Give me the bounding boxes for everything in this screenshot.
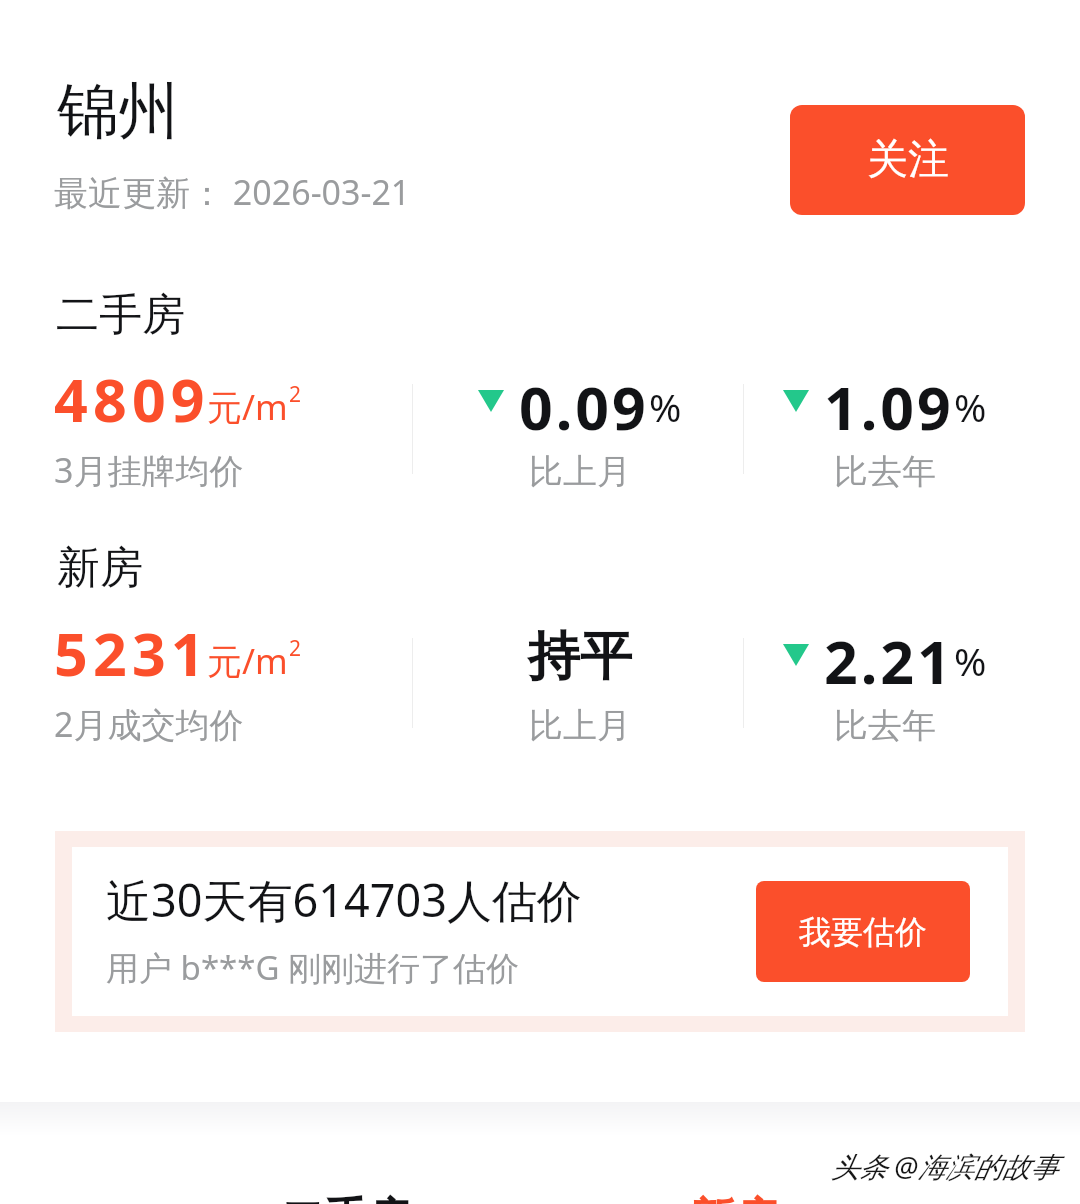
staticText: 2	[289, 634, 302, 663]
staticText: 近30天有614703人估价	[106, 869, 582, 930]
staticText: 用户 b***G 刚刚进行了估价	[106, 945, 520, 990]
staticText: %	[954, 380, 987, 433]
button[interactable]: 新房	[593, 1164, 873, 1204]
staticText: 2月成交均价	[54, 701, 244, 747]
staticText: 比上月	[529, 704, 631, 747]
staticText: 新房	[57, 541, 143, 595]
staticText: 持平	[528, 624, 632, 690]
staticText: 比去年	[834, 704, 936, 747]
button[interactable]: 0.09	[412, 380, 748, 493]
button[interactable]: 近30天有614703人估价	[72, 847, 1008, 1016]
button[interactable]: 关注	[790, 105, 1025, 215]
button[interactable]: 我要估价	[756, 881, 970, 982]
staticText: 比上月	[529, 450, 631, 493]
staticText: 新房	[690, 1192, 780, 1204]
staticText: 比去年	[834, 450, 936, 493]
button[interactable]: 二手房	[206, 1164, 486, 1204]
staticText: 二手房	[280, 1192, 412, 1204]
button[interactable]: 2.21	[743, 634, 1027, 747]
staticText: 2.21	[824, 621, 954, 691]
staticText: %	[649, 380, 682, 433]
staticText: %	[954, 634, 987, 687]
staticText: 2	[289, 380, 302, 409]
staticText: 关注	[867, 134, 949, 186]
staticText: 二手房	[56, 288, 185, 342]
button[interactable]: 持平	[412, 634, 748, 747]
staticText: 3月挂牌均价	[54, 447, 244, 493]
staticText: 4809	[54, 359, 210, 439]
staticText: 最近更新： 2026-03-21	[54, 169, 411, 215]
button[interactable]: 1.09	[743, 380, 1027, 493]
staticText: 锦州	[57, 73, 179, 150]
staticText: 元/m	[207, 383, 288, 431]
staticText: 头条 @海滨的故事	[831, 1147, 1059, 1185]
staticText: 我要估价	[799, 912, 927, 952]
staticText: 5231	[54, 613, 210, 693]
staticText: 元/m	[207, 637, 288, 685]
staticText: 1.09	[824, 367, 954, 437]
staticText: 0.09	[519, 367, 649, 437]
